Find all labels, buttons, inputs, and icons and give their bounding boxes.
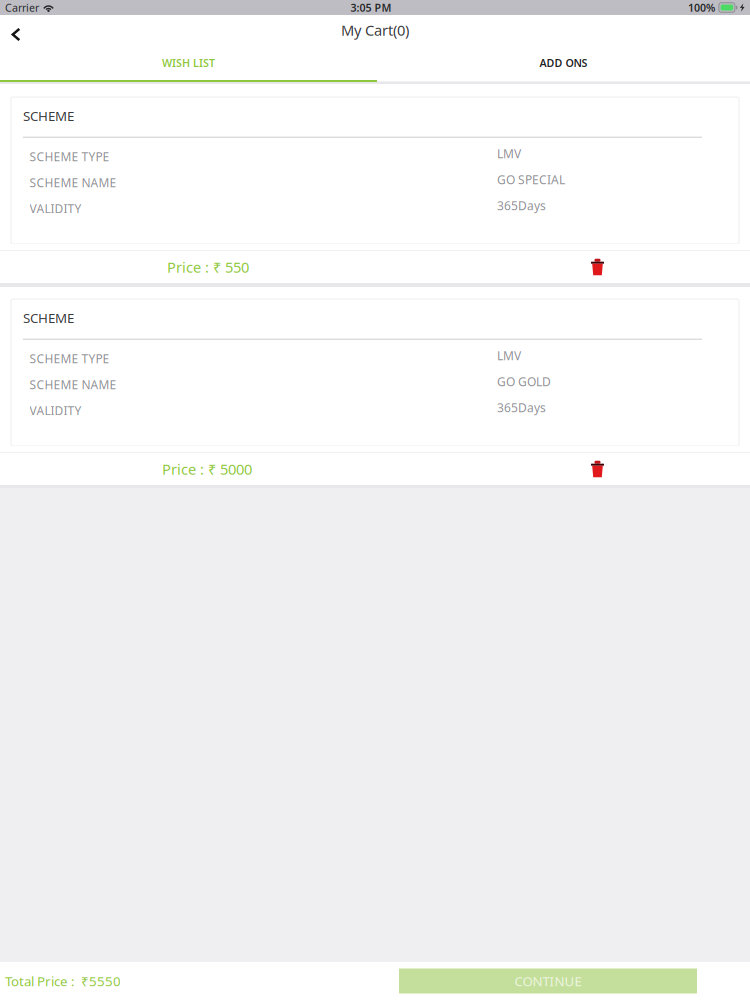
staticText: Total Price : ₹5550 <box>5 972 121 990</box>
staticText: CONTINUE <box>514 972 581 990</box>
button[interactable]: SCHEME <box>0 97 750 244</box>
staticText: SCHEME <box>23 107 74 125</box>
staticText: LMV <box>497 348 521 364</box>
staticText: VALIDITY <box>29 403 81 418</box>
staticText: Price : ₹ 5000 <box>162 459 252 479</box>
button[interactable]: CONTINUE <box>399 968 697 993</box>
button[interactable]: SCHEME <box>0 299 750 446</box>
staticText: SCHEME TYPE <box>29 351 109 367</box>
staticText: SCHEME TYPE <box>29 149 109 165</box>
button[interactable]: WISH LIST <box>0 45 377 82</box>
button[interactable]: ADD ONS <box>377 45 750 82</box>
button[interactable]: Back <box>0 12 31 48</box>
staticText: Carrier <box>5 0 39 15</box>
staticText: Price : ₹ 550 <box>167 257 249 277</box>
staticText: 365Days <box>497 400 546 415</box>
staticText: GO GOLD <box>497 374 551 389</box>
staticText: My Cart(0) <box>341 20 409 40</box>
staticText: VALIDITY <box>29 201 81 216</box>
staticText: 365Days <box>497 198 546 213</box>
staticText: SCHEME NAME <box>29 377 116 392</box>
staticText: ADD ONS <box>539 56 587 70</box>
staticText: WISH LIST <box>162 56 215 70</box>
staticText: 100% <box>688 0 715 15</box>
button[interactable]: Delete item <box>582 452 613 486</box>
staticText: LMV <box>497 146 521 162</box>
staticText: GO SPECIAL <box>497 172 565 187</box>
staticText: SCHEME NAME <box>29 175 116 190</box>
staticText: SCHEME <box>23 309 74 327</box>
button[interactable]: Delete item <box>582 250 613 284</box>
staticText: 3:05 PM <box>350 0 391 15</box>
